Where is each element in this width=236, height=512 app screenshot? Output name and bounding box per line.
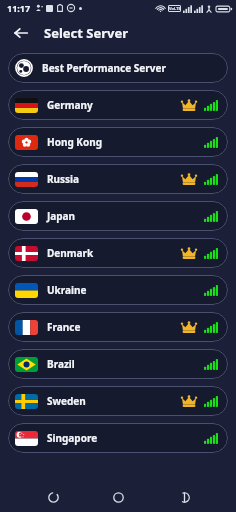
- button[interactable]: Back: [10, 22, 32, 44]
- button[interactable]: Back: [40, 484, 66, 510]
- button[interactable]: Russia: [8, 164, 228, 194]
- button[interactable]: Sweden: [8, 386, 228, 416]
- button[interactable]: Singapore: [8, 423, 228, 453]
- button[interactable]: France: [8, 312, 228, 342]
- staticText: VoLTE: [169, 6, 181, 11]
- button[interactable]: Ukraine: [8, 275, 228, 305]
- staticText: Best Performance Server: [42, 61, 166, 75]
- staticText: Germany: [47, 98, 93, 112]
- button[interactable]: Japan: [8, 201, 228, 231]
- button[interactable]: Recent apps: [171, 484, 197, 510]
- staticText: Singapore: [47, 431, 98, 445]
- staticText: 11:17: [7, 2, 31, 14]
- staticText: Ukraine: [47, 283, 87, 297]
- staticText: France: [47, 320, 81, 334]
- button[interactable]: Hong Kong: [8, 127, 228, 157]
- button[interactable]: Germany: [8, 90, 228, 120]
- staticText: Denmark: [47, 246, 94, 260]
- button[interactable]: Brazil: [8, 349, 228, 379]
- button[interactable]: Best Performance Server: [8, 53, 228, 83]
- staticText: Select Server: [44, 24, 129, 42]
- button[interactable]: Home: [105, 484, 131, 510]
- button[interactable]: Denmark: [8, 238, 228, 268]
- staticText: Sweden: [47, 394, 86, 408]
- staticText: Russia: [47, 172, 80, 186]
- staticText: Hong Kong: [47, 135, 103, 149]
- staticText: Brazil: [47, 357, 75, 371]
- staticText: Japan: [47, 209, 76, 223]
